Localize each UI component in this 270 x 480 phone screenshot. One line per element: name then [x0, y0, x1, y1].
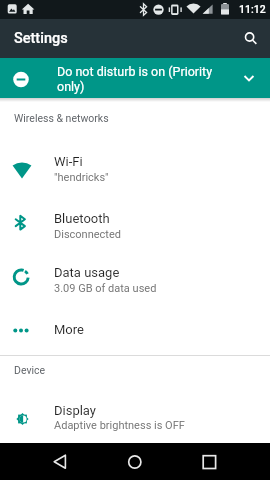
- button[interactable]: Bluetooth: [0, 199, 270, 254]
- staticText: Wi-Fi: [54, 154, 83, 169]
- staticText: only): [57, 79, 85, 94]
- staticText: Display: [54, 403, 96, 418]
- staticText: Bluetooth: [54, 211, 110, 226]
- staticText: 3.09 GB of data used: [54, 282, 157, 295]
- staticText: Data usage: [54, 265, 120, 280]
- button[interactable]: [180, 443, 230, 480]
- staticText: Device: [14, 364, 46, 376]
- button[interactable]: [231, 19, 270, 58]
- button[interactable]: [110, 443, 160, 480]
- button[interactable]: Display: [0, 390, 270, 443]
- button[interactable]: More: [0, 311, 270, 347]
- button[interactable]: [40, 443, 90, 480]
- staticText: Settings: [14, 30, 68, 47]
- button[interactable]: Do not disturb is on (Priority: [0, 58, 270, 98]
- staticText: Disconnected: [54, 228, 121, 241]
- staticText: 11:12: [239, 3, 266, 15]
- button[interactable]: Wi-Fi: [0, 142, 270, 197]
- staticText: Adaptive brightness is OFF: [54, 419, 185, 432]
- staticText: More: [54, 322, 84, 337]
- staticText: Do not disturb is on (Priority: [57, 64, 213, 79]
- button[interactable]: Data usage: [0, 253, 270, 308]
- staticText: Wireless & networks: [14, 112, 109, 124]
- staticText: "hendricks": [54, 171, 109, 184]
